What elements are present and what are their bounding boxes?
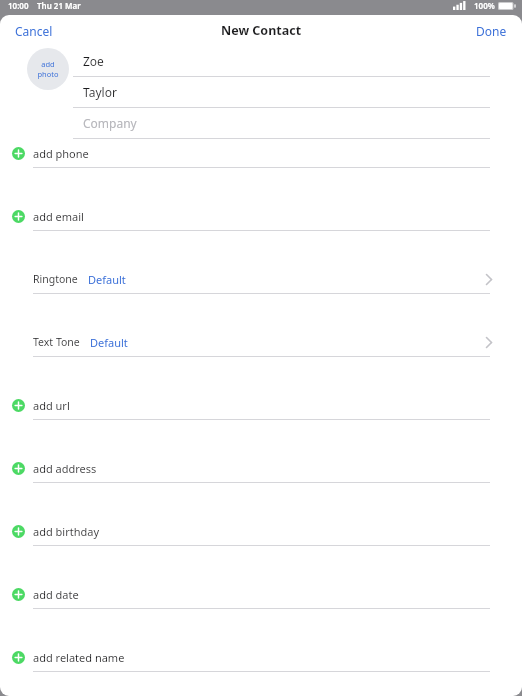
button[interactable]: add email xyxy=(0,202,522,265)
button[interactable]: Company xyxy=(73,108,490,139)
button[interactable]: Add photo xyxy=(27,48,69,90)
staticText: add date xyxy=(33,587,79,602)
button[interactable]: Text Tone xyxy=(0,328,522,391)
staticText: add address xyxy=(33,461,97,476)
staticText: add birthday xyxy=(33,524,100,539)
button[interactable]: Zoe xyxy=(73,46,490,77)
staticText: add email xyxy=(33,209,84,224)
staticText: add url xyxy=(33,398,70,413)
button[interactable]: Taylor xyxy=(73,77,490,108)
button[interactable]: add related name xyxy=(0,643,522,696)
staticText: Company xyxy=(83,115,137,131)
staticText: 100% xyxy=(474,0,495,11)
button[interactable]: Ringtone xyxy=(0,265,522,328)
staticText: add related name xyxy=(33,650,125,665)
staticText: 10:00 xyxy=(8,0,29,11)
staticText: Default xyxy=(90,335,128,350)
staticText: Text Tone xyxy=(33,335,80,349)
staticText: Default xyxy=(88,272,126,287)
staticText: Cancel xyxy=(15,23,53,39)
button[interactable]: add date xyxy=(0,580,522,643)
staticText: add phone xyxy=(33,146,89,161)
button[interactable]: Done xyxy=(461,17,522,45)
staticText: Done xyxy=(476,23,507,39)
staticText: Zoe xyxy=(83,53,104,69)
staticText: add xyxy=(41,59,55,69)
staticText: New Contact xyxy=(221,22,302,39)
staticText: Ringtone xyxy=(33,272,78,286)
button[interactable]: add birthday xyxy=(0,517,522,580)
staticText: Thu 21 Mar xyxy=(37,0,81,11)
button[interactable]: Cancel xyxy=(0,17,68,45)
staticText: photo xyxy=(37,69,59,79)
button[interactable]: add url xyxy=(0,391,522,454)
button[interactable]: add address xyxy=(0,454,522,517)
button[interactable]: add phone xyxy=(0,139,522,202)
staticText: Taylor xyxy=(83,84,117,100)
